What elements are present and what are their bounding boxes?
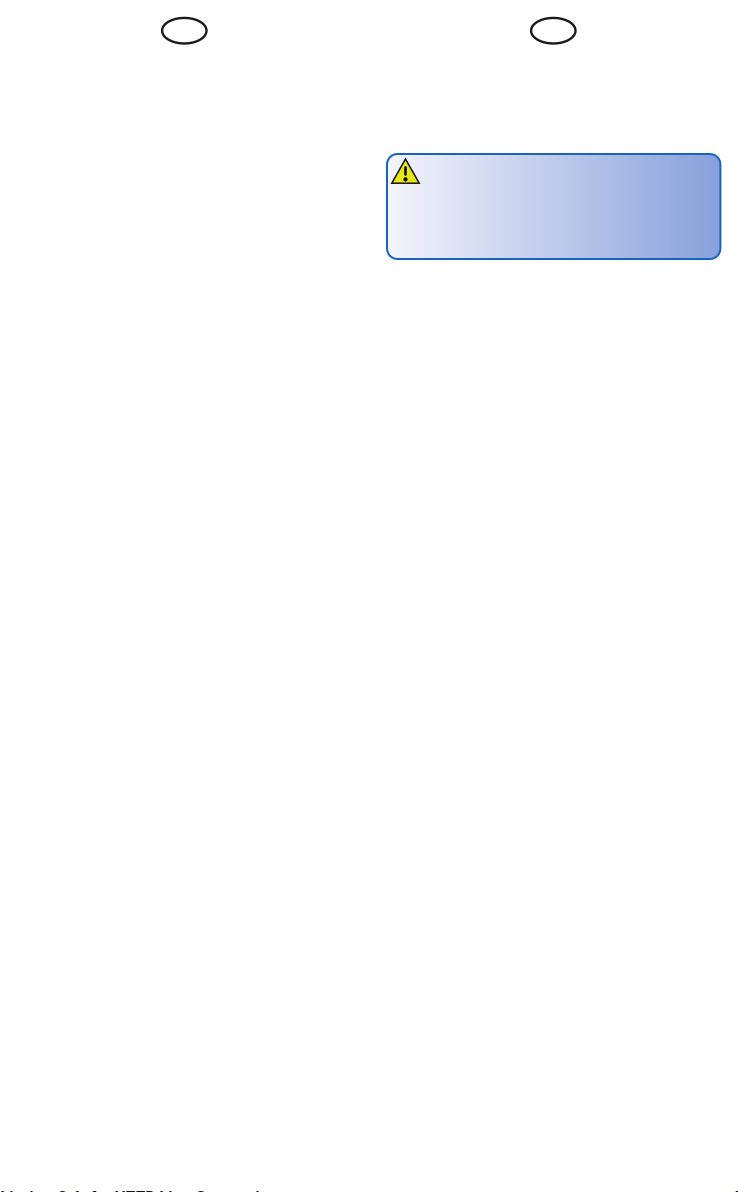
button[interactable]: Warning note: [387, 154, 720, 259]
staticText: 7: [735, 1186, 738, 1192]
staticText: Listing 2-1 An HTTP Live Streaming: [0, 1186, 280, 1192]
